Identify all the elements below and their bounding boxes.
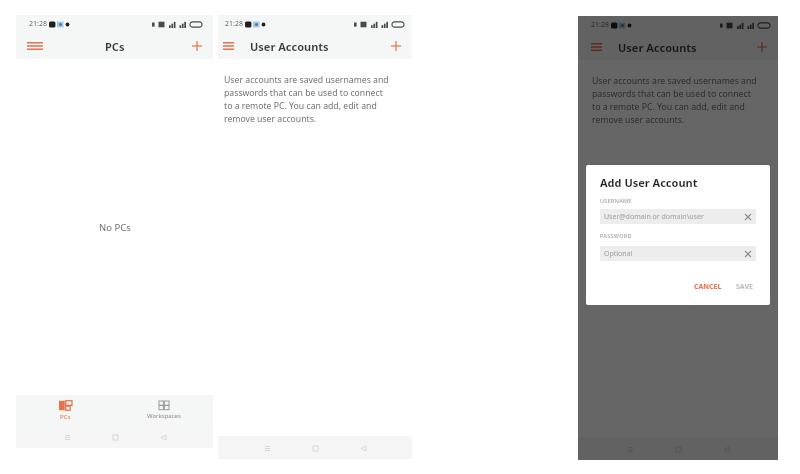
button[interactable]: Add <box>753 38 771 56</box>
staticText: 21:28 <box>225 19 243 29</box>
button[interactable]: Menu <box>219 36 238 56</box>
staticText: 21:28 <box>29 19 47 29</box>
staticText: PCs <box>60 413 71 421</box>
button[interactable]: Menu <box>587 37 606 57</box>
staticText: User accounts are saved usernames and pa… <box>224 74 389 125</box>
button[interactable]: Recents <box>259 440 275 456</box>
staticText: User@domain or domain\user <box>604 212 704 222</box>
staticText: USERNAME <box>600 197 632 204</box>
staticText: User Accounts <box>250 39 329 54</box>
button[interactable]: Dismiss dialog <box>578 16 778 460</box>
staticText: PCs <box>105 39 125 54</box>
button[interactable]: Home <box>307 440 323 456</box>
button[interactable]: Recents <box>59 429 75 445</box>
button[interactable]: PCs <box>16 395 114 425</box>
button[interactable]: Workspaces <box>114 395 213 425</box>
staticText: Workspaces <box>147 412 181 420</box>
button[interactable]: Clear password <box>743 249 752 258</box>
button[interactable]: Home <box>107 429 123 445</box>
button[interactable]: Back <box>355 440 371 456</box>
staticText: 21:28 <box>591 20 609 30</box>
button[interactable]: Menu <box>23 36 47 56</box>
staticText: User accounts are saved usernames and pa… <box>592 75 757 126</box>
staticText: User Accounts <box>618 40 697 55</box>
staticText: Add User Account <box>600 175 698 190</box>
staticText: Optional <box>604 249 633 259</box>
button[interactable]: Add <box>188 37 206 55</box>
button[interactable]: Back <box>155 429 171 445</box>
staticText: SAVE <box>736 282 753 292</box>
button[interactable]: CANCEL <box>691 280 725 294</box>
button[interactable]: SAVE <box>733 280 756 294</box>
staticText: No PCs <box>99 221 131 234</box>
button[interactable]: Clear username <box>743 212 752 221</box>
staticText: CANCEL <box>694 282 722 292</box>
staticText: PASSWORD <box>600 232 632 239</box>
button[interactable]: Add <box>387 37 405 55</box>
